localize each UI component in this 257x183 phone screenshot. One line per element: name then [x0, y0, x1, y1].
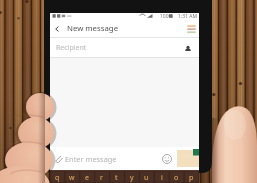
staticText: Enter message	[65, 154, 117, 164]
staticText: e	[85, 173, 89, 183]
staticText: y	[130, 173, 134, 183]
staticText: 100%	[160, 13, 173, 19]
button[interactable]: Key e	[79, 172, 94, 183]
staticText: New message	[67, 23, 119, 34]
button[interactable]: Key t	[109, 172, 124, 183]
staticText: Recipient	[56, 43, 87, 53]
button[interactable]: Emoji	[160, 152, 174, 166]
button[interactable]: Attach file	[52, 152, 65, 165]
button[interactable]: Contacts	[184, 19, 199, 38]
button[interactable]: Key r	[94, 172, 109, 183]
button[interactable]: Key q	[50, 172, 64, 183]
staticText: p	[189, 173, 194, 183]
button[interactable]: Add recipient	[181, 42, 194, 55]
button[interactable]: Key y	[124, 172, 139, 183]
staticText: i	[161, 173, 163, 183]
staticText: o	[174, 173, 179, 183]
button[interactable]: Key w	[64, 172, 79, 183]
staticText: q	[55, 173, 60, 183]
staticText: 1:31 AM	[178, 13, 197, 19]
staticText: w	[69, 173, 75, 183]
button[interactable]: Key u	[139, 172, 154, 183]
button[interactable]: Key p	[184, 172, 199, 183]
staticText: r	[100, 173, 103, 183]
button[interactable]: Send	[177, 150, 199, 167]
button[interactable]: Key o	[169, 172, 184, 183]
staticText: t	[115, 173, 118, 183]
button[interactable]: Back	[50, 19, 64, 38]
button[interactable]: Key i	[154, 172, 169, 183]
staticText: u	[144, 173, 149, 183]
